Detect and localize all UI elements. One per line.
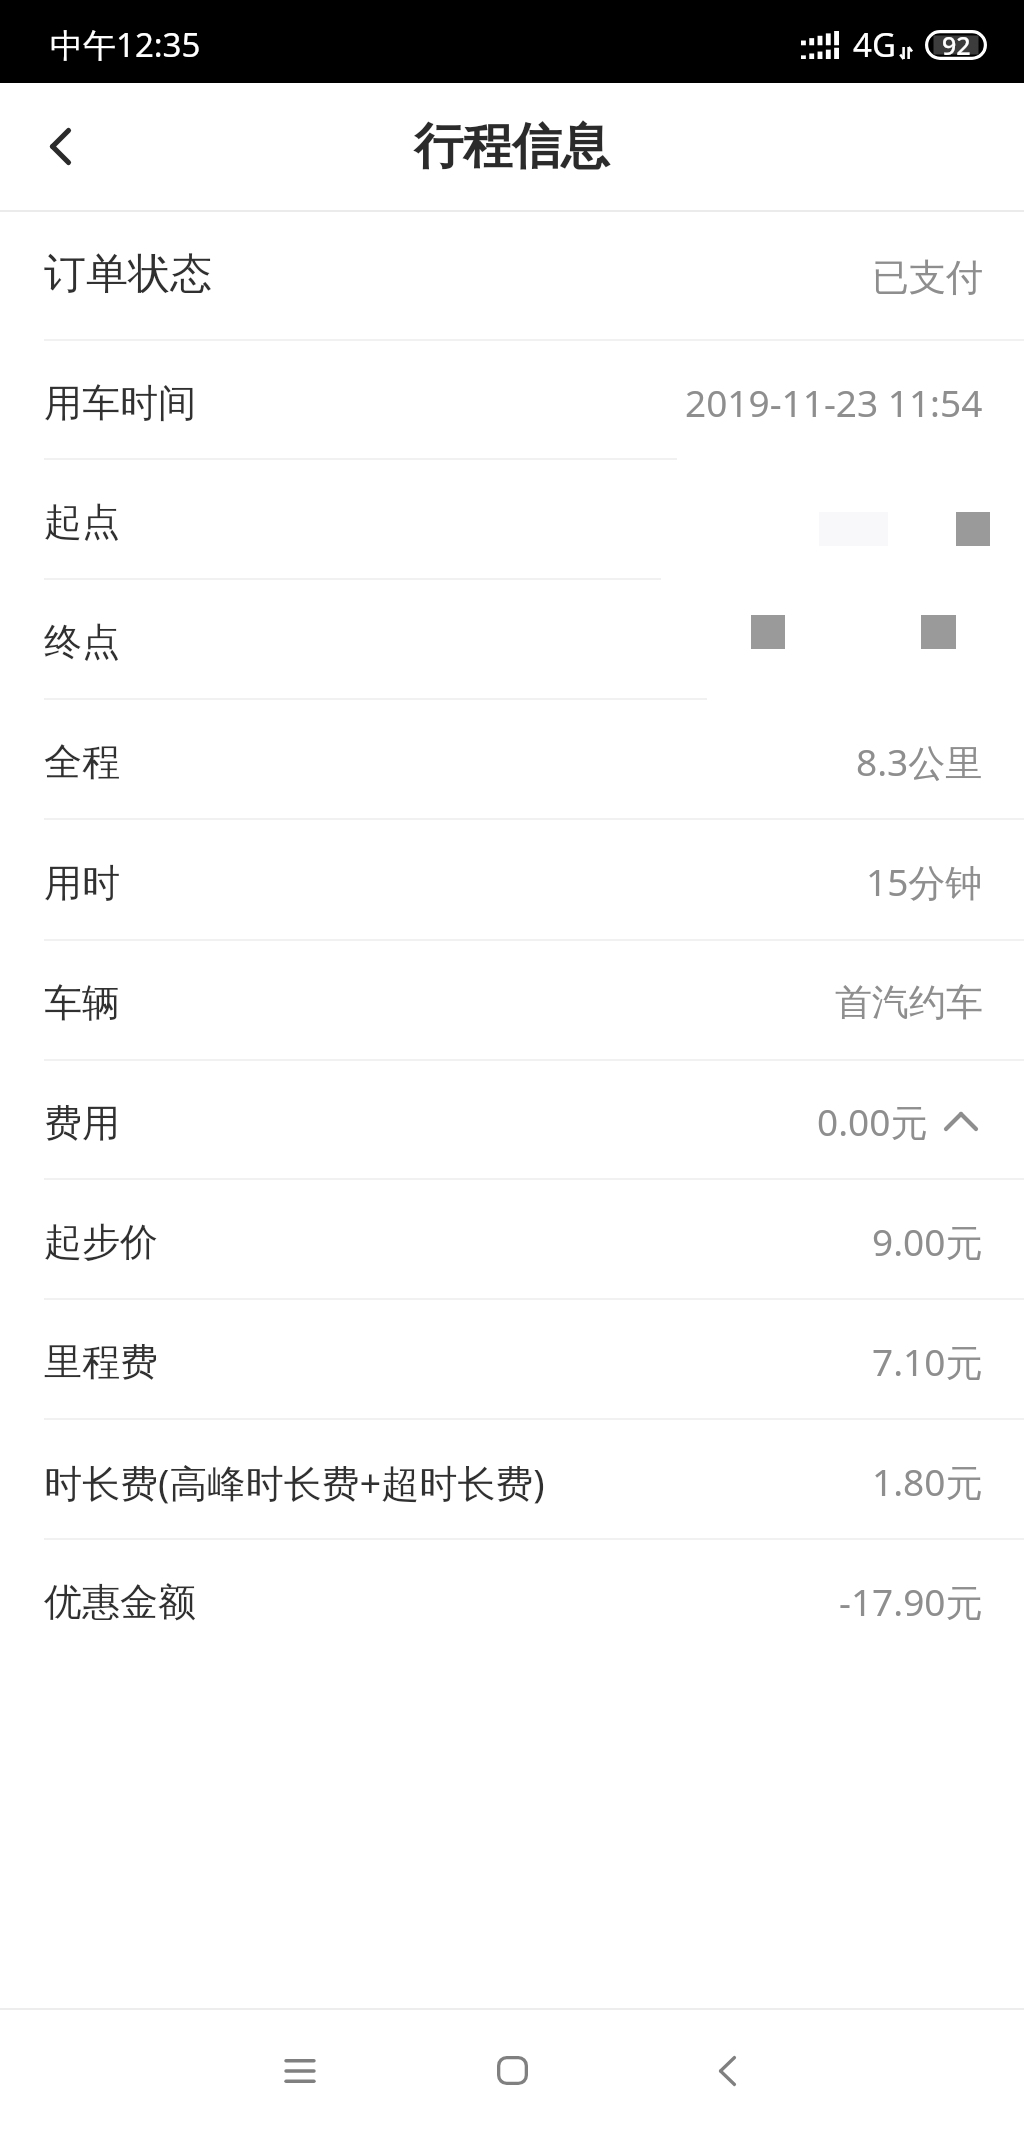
staticText: 2019-11-23 11:54 bbox=[685, 377, 983, 427]
staticText: 行程信息 bbox=[414, 116, 610, 178]
staticText: 优惠金额 bbox=[44, 1578, 196, 1626]
button[interactable]: Home bbox=[452, 2010, 572, 2131]
button[interactable]: 车辆 bbox=[0, 941, 1024, 1061]
staticText: 已支付 bbox=[872, 254, 983, 301]
button[interactable]: Back bbox=[664, 2010, 784, 2131]
staticText: 7.10元 bbox=[872, 1336, 983, 1387]
button[interactable]: 用时 bbox=[0, 820, 1024, 941]
button[interactable]: 时长费(高峰时长费+超时长费) bbox=[0, 1420, 1024, 1540]
staticText: 费用 bbox=[44, 1099, 120, 1147]
staticText: 0.00元 bbox=[817, 1096, 928, 1147]
button[interactable]: Back bbox=[0, 83, 112, 210]
button[interactable]: 费用 bbox=[0, 1061, 1024, 1180]
button[interactable]: 优惠金额 bbox=[0, 1540, 1024, 1660]
staticText: 车辆 bbox=[44, 979, 120, 1027]
staticText: 15分钟 bbox=[866, 856, 983, 907]
staticText: 时长费(高峰时长费+超时长费) bbox=[44, 1456, 545, 1508]
staticText: 全程 bbox=[44, 738, 120, 786]
staticText: 9.00元 bbox=[872, 1216, 983, 1267]
staticText: 92 bbox=[942, 28, 971, 58]
staticText: 用车时间 bbox=[44, 379, 196, 427]
staticText: 起点 bbox=[44, 498, 120, 546]
button[interactable]: 起点 bbox=[0, 460, 1024, 580]
staticText: 里程费 bbox=[44, 1338, 158, 1386]
button[interactable]: 终点 bbox=[0, 580, 1024, 700]
staticText: 4G bbox=[853, 22, 896, 67]
staticText: -17.90元 bbox=[839, 1576, 983, 1627]
button[interactable]: 订单状态 bbox=[0, 212, 1024, 341]
staticText: 首汽约车 bbox=[835, 979, 983, 1026]
button[interactable]: 里程费 bbox=[0, 1300, 1024, 1420]
button[interactable]: 用车时间 bbox=[0, 341, 1024, 460]
staticText: 起步价 bbox=[44, 1218, 158, 1266]
staticText: 1.80元 bbox=[872, 1456, 983, 1507]
button[interactable]: 起步价 bbox=[0, 1180, 1024, 1300]
staticText: 订单状态 bbox=[44, 248, 212, 301]
staticText: 用时 bbox=[44, 859, 120, 907]
button[interactable]: 全程 bbox=[0, 700, 1024, 820]
staticText: 终点 bbox=[44, 618, 120, 666]
button[interactable]: Recent apps bbox=[240, 2010, 360, 2131]
staticText: 8.3公里 bbox=[856, 736, 983, 787]
staticText: 中午12:35 bbox=[50, 22, 201, 67]
